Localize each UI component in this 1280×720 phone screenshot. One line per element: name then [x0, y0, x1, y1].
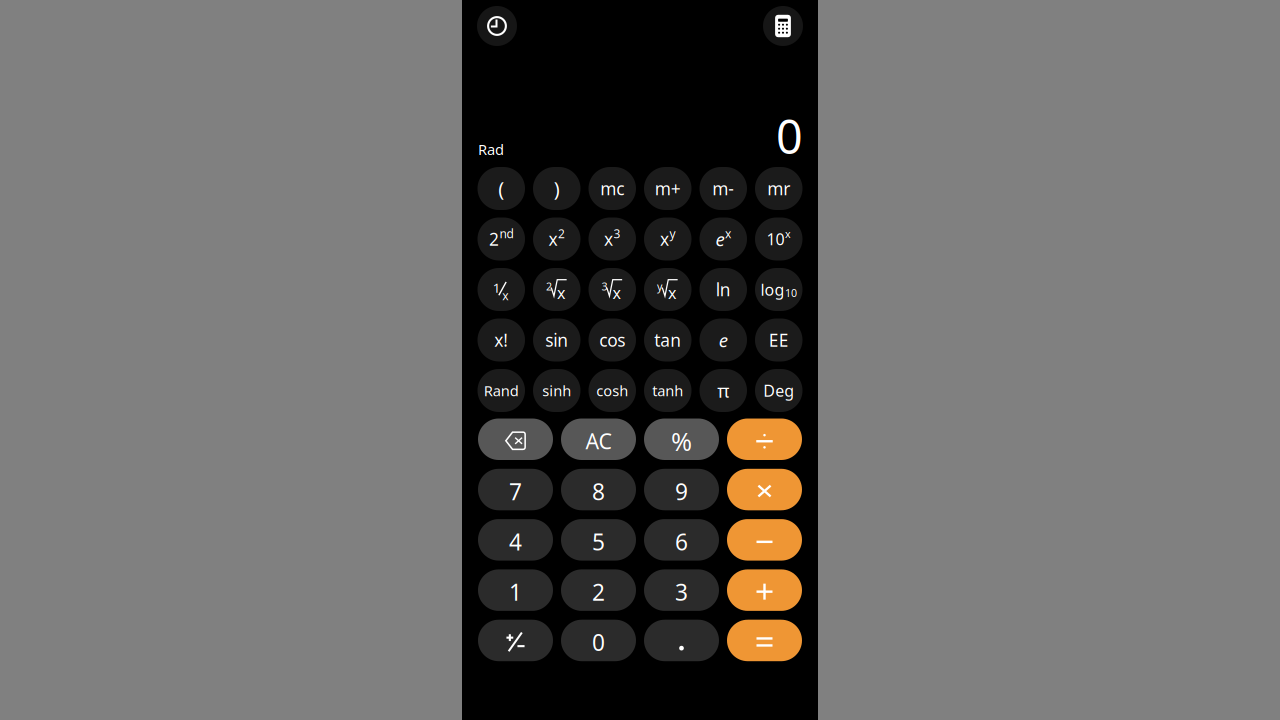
button[interactable]: x! [477, 318, 525, 361]
staticText: Rand [484, 381, 519, 400]
button[interactable]: 2 [561, 569, 636, 611]
staticText: 0 [776, 105, 803, 167]
button[interactable]: ex [699, 217, 747, 260]
button[interactable]: Decimal point [644, 620, 719, 661]
staticText: cos [599, 328, 625, 351]
button[interactable]: % [644, 418, 719, 460]
button[interactable]: 8 [561, 469, 636, 510]
button[interactable]: 4 [478, 519, 553, 561]
staticText: 7 [509, 476, 522, 506]
button[interactable]: m+ [644, 167, 691, 210]
button[interactable]: History [477, 6, 517, 46]
staticText: x [613, 282, 621, 303]
staticText: 0 [592, 627, 605, 657]
button[interactable]: Delete [478, 418, 553, 460]
button[interactable]: 7 [478, 469, 553, 510]
staticText: ln [716, 278, 731, 301]
staticText: y [669, 226, 675, 241]
button[interactable]: 3 [644, 569, 719, 611]
staticText: mr [767, 177, 790, 200]
button[interactable]: x2 [533, 217, 580, 260]
staticText: ) [554, 175, 560, 202]
staticText: 2 [546, 279, 552, 293]
staticText: x [604, 227, 613, 250]
button[interactable]: AC [561, 418, 636, 460]
staticText: x [660, 227, 669, 250]
button[interactable]: 2nd [477, 217, 525, 260]
button[interactable]: 6 [644, 519, 719, 561]
button[interactable]: Deg [755, 369, 802, 412]
button[interactable]: Plus [727, 569, 802, 611]
button[interactable]: y root of x [644, 268, 691, 311]
staticText: nd [499, 226, 513, 241]
button[interactable]: ) [533, 167, 580, 210]
staticText: 5 [592, 527, 605, 557]
staticText: sinh [542, 381, 571, 400]
button[interactable]: ln [699, 268, 747, 311]
staticText: 10 [766, 228, 784, 250]
staticText: 2 [592, 577, 605, 607]
button[interactable]: 1 over x [477, 268, 525, 311]
staticText: log [761, 279, 785, 300]
button[interactable]: π [699, 369, 747, 412]
button[interactable]: Minus [727, 519, 802, 561]
staticText: π [717, 378, 729, 403]
staticText: x [725, 226, 731, 241]
staticText: e [719, 328, 728, 352]
button[interactable]: log10 [755, 268, 802, 311]
staticText: Rad [478, 139, 504, 159]
button[interactable]: tanh [644, 369, 691, 412]
button[interactable]: Rand [477, 369, 525, 412]
staticText: 9 [675, 476, 688, 506]
staticText: Deg [763, 380, 794, 401]
button[interactable]: x3 [588, 217, 636, 260]
button[interactable]: sin [533, 318, 580, 361]
button[interactable]: xy [644, 217, 691, 260]
staticText: x [785, 227, 791, 241]
button[interactable]: 5 [561, 519, 636, 561]
button[interactable]: 2 root of x [533, 268, 580, 311]
staticText: 10 [785, 286, 797, 300]
button[interactable]: Multiply [727, 469, 802, 510]
button[interactable]: 1 [478, 569, 553, 611]
button[interactable]: mc [588, 167, 636, 210]
button[interactable]: 0 [561, 620, 636, 661]
staticText: mc [600, 177, 624, 200]
staticText: 6 [675, 527, 688, 557]
button[interactable]: tan [644, 318, 691, 361]
staticText: m- [712, 177, 734, 200]
button[interactable]: cosh [588, 369, 636, 412]
staticText: 2 [558, 226, 565, 241]
staticText: cosh [596, 381, 628, 400]
staticText: 1 [509, 577, 522, 607]
staticText: tan [654, 328, 681, 351]
button[interactable]: ( [477, 167, 525, 210]
staticText: tanh [652, 381, 683, 400]
button[interactable]: 9 [644, 469, 719, 510]
button[interactable]: Divide [727, 418, 802, 460]
button[interactable]: Equals [727, 620, 802, 661]
staticText: x [557, 282, 565, 303]
button[interactable]: e [699, 318, 747, 361]
staticText: ( [498, 175, 504, 202]
button[interactable]: Plus minus [478, 620, 553, 661]
button[interactable]: Calculator [763, 6, 803, 46]
staticText: % [671, 424, 692, 458]
button[interactable]: mr [755, 167, 802, 210]
button[interactable]: 3 root of x [588, 268, 636, 311]
staticText: 2 [489, 227, 499, 250]
staticText: e [715, 227, 724, 251]
button[interactable]: m- [699, 167, 747, 210]
staticText: 1 [493, 279, 501, 296]
button[interactable]: sinh [533, 369, 580, 412]
button[interactable]: EE [755, 318, 802, 361]
staticText: 8 [592, 476, 605, 506]
staticText: m+ [655, 177, 681, 200]
staticText: AC [585, 427, 611, 455]
button[interactable]: cos [588, 318, 636, 361]
staticText: x! [494, 328, 508, 351]
button[interactable]: 10x [755, 217, 802, 260]
staticText: 3 [602, 279, 608, 293]
staticText: EE [769, 328, 789, 351]
staticText: 3 [675, 577, 688, 607]
